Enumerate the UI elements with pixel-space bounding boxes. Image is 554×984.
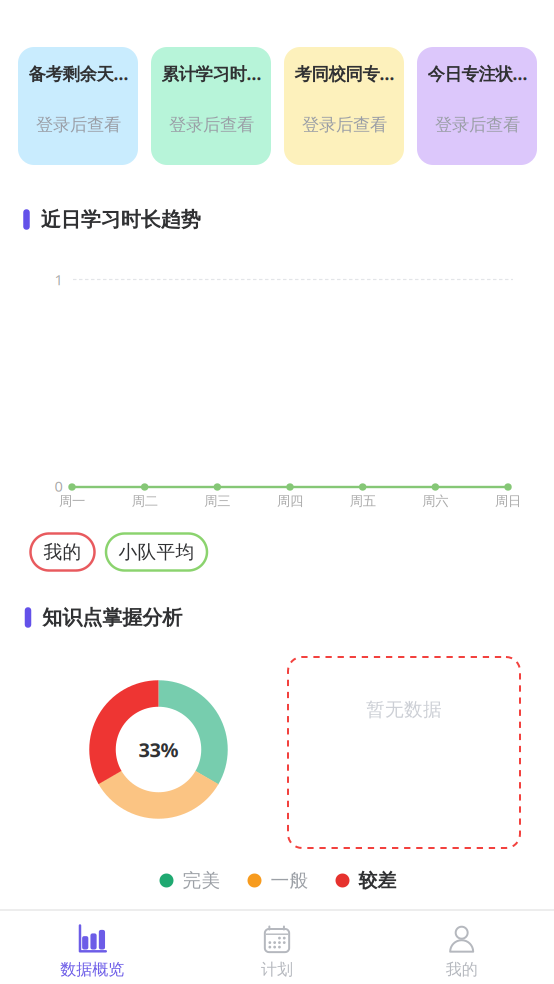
staticText: 我的 — [446, 959, 478, 979]
button[interactable]: 数据概览 — [0, 914, 185, 984]
button[interactable]: 累计学习时... — [151, 47, 271, 165]
staticText: 备考剩余天... — [28, 62, 128, 85]
staticText: 数据概览 — [60, 959, 124, 979]
staticText: 累计学习时... — [161, 62, 261, 85]
staticText: 周六 — [422, 493, 448, 509]
staticText: 登录后查看 — [435, 114, 520, 135]
button[interactable]: 备考剩余天... — [18, 47, 138, 165]
staticText: 我的 — [43, 540, 81, 563]
button[interactable]: 考同校同专... — [284, 47, 404, 165]
staticText: 暂无数据 — [366, 698, 442, 721]
staticText: 周三 — [204, 493, 230, 509]
staticText: 登录后查看 — [36, 114, 121, 135]
staticText: 登录后查看 — [169, 114, 254, 135]
staticText: 今日专注状... — [427, 62, 527, 85]
staticText: 周四 — [277, 493, 303, 509]
button[interactable]: 今日专注状... — [417, 47, 537, 165]
button[interactable]: 小队平均 — [106, 533, 207, 570]
staticText: 登录后查看 — [302, 114, 387, 135]
staticText: 周五 — [350, 493, 376, 509]
staticText: 0 — [54, 476, 62, 496]
staticText: 一般 — [270, 869, 308, 892]
staticText: 近日学习时长趋势 — [41, 207, 201, 232]
staticText: 知识点掌握分析 — [42, 605, 182, 630]
staticText: 周二 — [132, 493, 158, 509]
staticText: 小队平均 — [118, 540, 194, 563]
button[interactable]: 计划 — [185, 914, 369, 984]
button[interactable]: 我的 — [369, 914, 554, 984]
staticText: 周一 — [59, 493, 85, 509]
staticText: 计划 — [261, 959, 293, 979]
staticText: 1 — [54, 270, 62, 289]
staticText: 周日 — [495, 493, 521, 509]
button[interactable]: 我的 — [30, 533, 94, 570]
staticText: 33% — [138, 736, 178, 763]
staticText: 较差 — [358, 869, 396, 892]
staticText: 完美 — [182, 869, 220, 892]
staticText: 考同校同专... — [294, 62, 394, 85]
